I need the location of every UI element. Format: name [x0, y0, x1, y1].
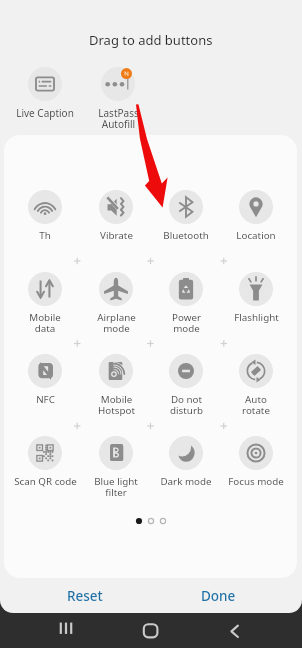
- button[interactable]: Auto rotate: [221, 354, 291, 417]
- button[interactable]: Flashlight: [221, 272, 291, 324]
- button[interactable]: Back: [213, 612, 257, 648]
- staticText: Reset: [67, 587, 103, 605]
- button[interactable]: LastPass Autofill: [83, 67, 153, 130]
- button[interactable]: Airplane mode: [81, 272, 151, 335]
- staticText: Done: [201, 587, 236, 605]
- button[interactable]: Bluetooth: [151, 190, 221, 242]
- button[interactable]: Location: [221, 190, 291, 242]
- button[interactable]: Mobile Hotspot: [81, 354, 151, 417]
- staticText: Mobile data: [29, 311, 61, 335]
- button[interactable]: Focus mode: [221, 436, 291, 488]
- staticText: Flashlight: [234, 311, 279, 324]
- staticText: Do not disturb: [170, 393, 203, 417]
- button[interactable]: Home: [129, 612, 173, 648]
- staticText: Vibrate: [100, 229, 133, 242]
- button[interactable]: Done: [156, 580, 281, 611]
- staticText: Live Caption: [16, 106, 74, 120]
- staticText: Focus mode: [228, 475, 284, 488]
- staticText: Airplane mode: [97, 311, 136, 335]
- button[interactable]: Blue light filter: [81, 436, 151, 499]
- button[interactable]: Vibrate: [81, 190, 151, 242]
- staticText: Bluetooth: [163, 229, 209, 242]
- button: Drag to add buttons: [0, 29, 302, 51]
- button[interactable]: Power mode: [151, 272, 221, 335]
- staticText: Power mode: [172, 311, 201, 335]
- button[interactable]: Live Caption: [10, 67, 80, 120]
- button[interactable]: Do not disturb: [151, 354, 221, 417]
- staticText: Mobile Hotspot: [98, 393, 135, 417]
- staticText: Drag to add buttons: [89, 31, 213, 49]
- staticText: Scan QR code: [14, 475, 77, 488]
- staticText: Auto rotate: [242, 393, 270, 417]
- staticText: LastPass Autofill: [98, 106, 139, 130]
- staticText: Blue light filter: [94, 475, 138, 499]
- button[interactable]: Dark mode: [151, 436, 221, 488]
- staticText: NFC: [36, 393, 55, 406]
- staticText: Location: [236, 229, 276, 242]
- button[interactable]: NFC: [10, 354, 80, 406]
- button[interactable]: Recents: [44, 612, 88, 648]
- staticText: Dark mode: [160, 475, 212, 488]
- staticText: Th: [39, 229, 51, 242]
- button[interactable]: Mobile data: [10, 272, 80, 335]
- button[interactable]: Scan QR code: [10, 436, 80, 488]
- button[interactable]: Th: [10, 190, 80, 242]
- button[interactable]: Reset: [22, 580, 147, 611]
